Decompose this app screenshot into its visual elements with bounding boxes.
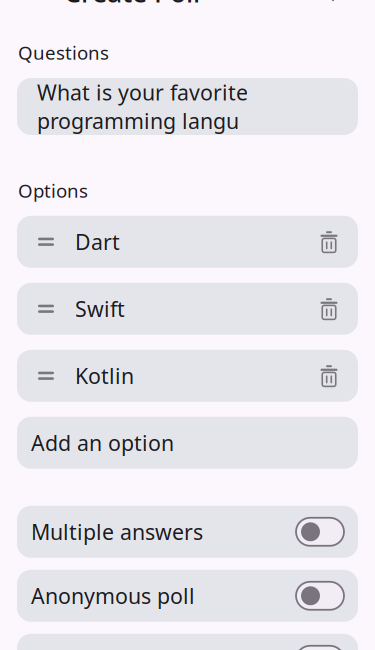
button[interactable]: Swift [0, 283, 375, 335]
staticText: Options [18, 178, 88, 203]
staticText: Add an option [31, 429, 174, 457]
staticText: Questions [18, 40, 109, 65]
button[interactable]: Dart [0, 216, 375, 268]
staticText: Multiple answers [31, 518, 203, 546]
button[interactable]: Add an option [0, 417, 375, 469]
staticText: Swift [75, 295, 125, 323]
staticText: Anonymous poll [31, 582, 195, 610]
button[interactable]: Anonymous poll [0, 570, 375, 622]
button[interactable]: Multiple answers [0, 506, 375, 558]
staticText: Dart [75, 228, 120, 256]
staticText: Kotlin [75, 362, 134, 390]
staticText: What is your favorite programming langu [37, 78, 248, 135]
staticText: Create Poll [64, 0, 200, 10]
button[interactable]: Send poll [321, 0, 365, 14]
button[interactable]: Kotlin [0, 350, 375, 402]
button[interactable]: Quiz mode [0, 634, 375, 650]
button[interactable]: What is your favorite programming langu [0, 78, 375, 135]
